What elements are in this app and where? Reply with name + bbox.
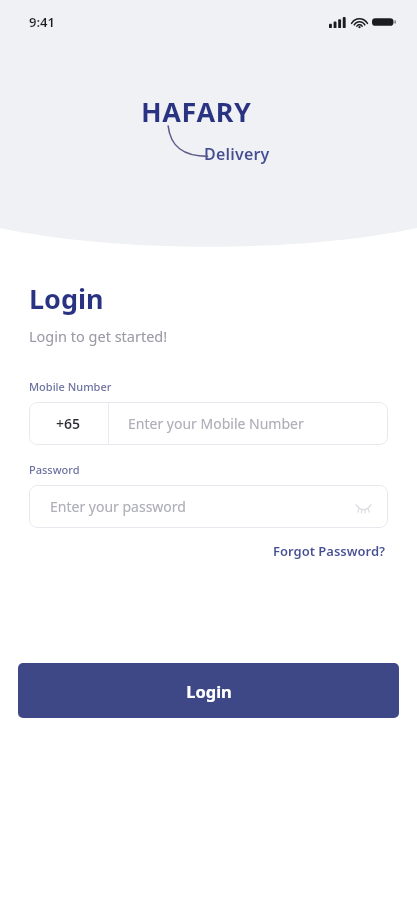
button[interactable]: Enter your password: [29, 485, 388, 528]
staticText: Password: [29, 462, 80, 477]
staticText: Forgot Password?: [273, 542, 386, 560]
staticText: Delivery: [204, 143, 270, 165]
staticText: HAFARY: [141, 93, 252, 130]
staticText: 9:41: [29, 13, 55, 31]
staticText: Login: [29, 280, 104, 317]
staticText: +65: [56, 414, 81, 433]
staticText: Login: [186, 680, 232, 702]
button[interactable]: Forgot Password?: [271, 539, 388, 563]
staticText: Login to get started!: [29, 326, 168, 346]
button[interactable]: +65: [29, 402, 388, 445]
staticText: Mobile Number: [29, 379, 112, 394]
staticText: Enter your password: [50, 497, 186, 516]
button[interactable]: Show password: [350, 494, 376, 520]
button[interactable]: Login: [18, 663, 399, 718]
staticText: Enter your Mobile Number: [128, 414, 304, 433]
